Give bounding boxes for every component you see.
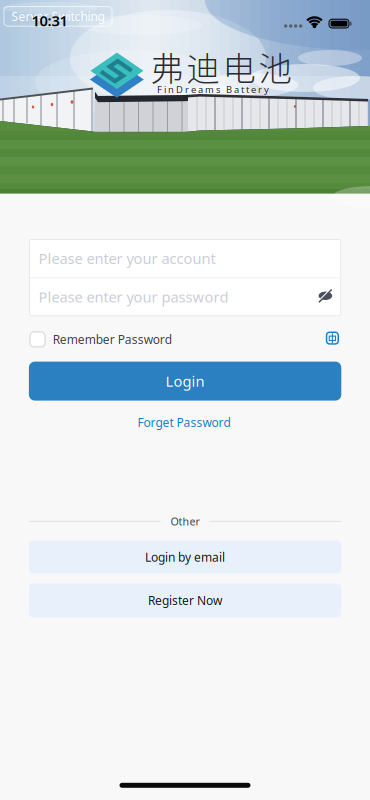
staticText: Register Now [148, 592, 222, 608]
button[interactable]: Forget Password [137, 414, 230, 430]
button[interactable]: Login [29, 362, 341, 401]
button[interactable]: Remember Password [29, 326, 249, 352]
staticText: FinDreams Battery [157, 83, 269, 96]
staticText: Forget Password [137, 414, 230, 430]
staticText: Other [171, 514, 200, 528]
button[interactable]: Server Switching [3, 6, 112, 27]
staticText: 10:31 [31, 11, 67, 30]
button[interactable]: Login by email [29, 540, 341, 574]
staticText: Login [166, 371, 205, 391]
staticText: Remember Password [53, 331, 172, 347]
button[interactable]: Register Now [29, 583, 341, 617]
button[interactable] [326, 331, 339, 345]
staticText: Server Switching [11, 8, 104, 24]
staticText: Login by email [145, 549, 225, 565]
button[interactable]: Please enter your account [29, 239, 341, 277]
staticText: 弗迪电池 [150, 42, 291, 91]
button[interactable] [312, 283, 338, 309]
staticText: Please enter your password [38, 287, 228, 307]
staticText: Please enter your account [38, 248, 215, 268]
button[interactable]: Please enter your password [29, 278, 341, 316]
